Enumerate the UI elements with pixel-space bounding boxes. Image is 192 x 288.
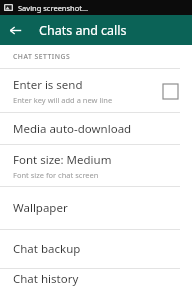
button[interactable]: Chat history — [0, 269, 192, 288]
other: Screenshot saved — [4, 3, 13, 12]
staticText: Enter is send — [13, 77, 83, 93]
staticText: Wallpaper — [13, 200, 68, 216]
staticText: Saving screenshot... — [18, 3, 89, 13]
button[interactable]: Chat backup — [0, 230, 192, 268]
staticText: Font size: Medium — [13, 152, 112, 168]
staticText: Chats and calls — [39, 22, 127, 39]
staticText: Enter key will add a new line — [13, 95, 113, 105]
button[interactable]: Wallpaper — [0, 187, 192, 229]
button[interactable]: Enter is send — [0, 69, 192, 112]
staticText: Media auto-download — [13, 121, 132, 137]
button[interactable]: Back — [0, 15, 30, 45]
staticText: Font size for chat screen — [13, 170, 99, 180]
button[interactable]: Media auto-download — [0, 113, 192, 144]
staticText: Chat backup — [13, 241, 81, 257]
button[interactable]: Font size: Medium — [0, 145, 192, 186]
staticText: Chat history — [13, 271, 79, 287]
button[interactable]: Enter is send, unchecked — [159, 80, 181, 102]
staticText: CHAT SETTINGS — [13, 52, 71, 61]
